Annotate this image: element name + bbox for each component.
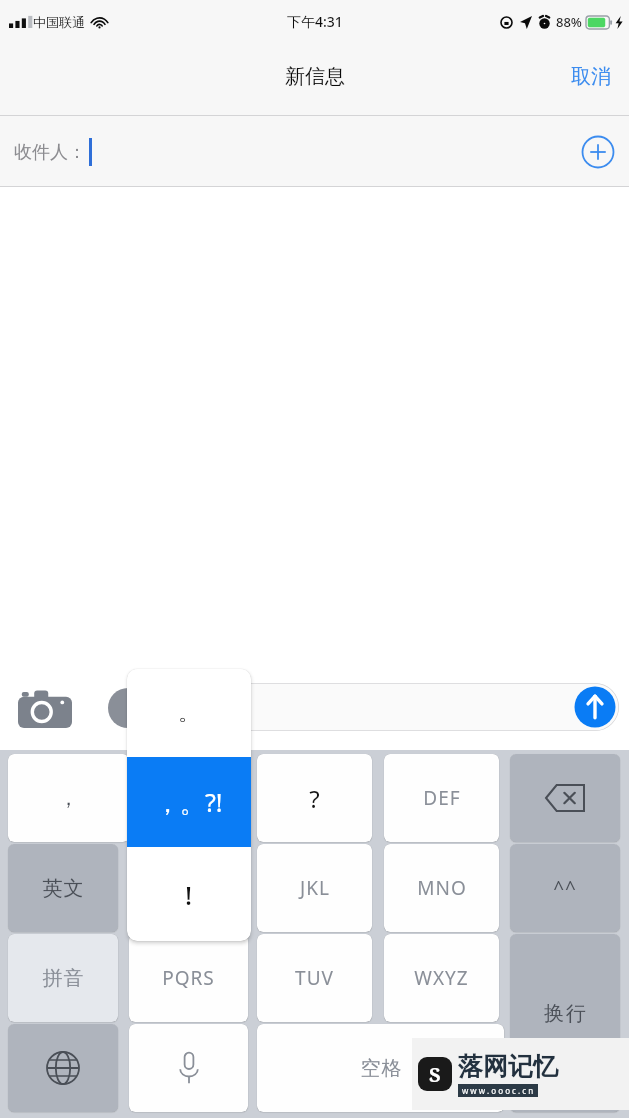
staticText: ^^: [553, 875, 577, 901]
button[interactable]: 换行: [510, 934, 620, 1112]
staticText: S: [429, 1061, 441, 1088]
button[interactable]: 拼音: [8, 934, 118, 1022]
button[interactable]: Add contact: [581, 135, 615, 169]
button[interactable]: Dictation: [129, 1024, 248, 1112]
staticText: 下午4:31: [287, 12, 343, 31]
staticText: 拼音: [42, 966, 84, 991]
staticText: 88%: [556, 13, 582, 31]
button[interactable]: TUV: [257, 934, 372, 1022]
staticText: 中国联通: [33, 14, 85, 30]
button[interactable]: 。: [127, 669, 251, 941]
staticText: ，。?!: [155, 785, 223, 819]
button[interactable]: ?: [257, 754, 372, 842]
staticText: 取消: [571, 64, 611, 89]
button[interactable]: 空格: [257, 1024, 504, 1112]
button[interactable]: Switch keyboard: [8, 1024, 118, 1112]
staticText: 新信息: [285, 64, 345, 89]
button[interactable]: Send: [573, 685, 617, 729]
staticText: ?: [309, 782, 321, 815]
button[interactable]: ^^: [510, 844, 620, 932]
staticText: 换行: [543, 1001, 587, 1026]
staticText: 收件人：: [14, 141, 86, 164]
button[interactable]: Send: [149, 683, 619, 731]
staticText: 空格: [360, 1056, 402, 1081]
button[interactable]: PQRS: [129, 934, 248, 1022]
staticText: 英文: [42, 876, 84, 901]
staticText: !: [185, 877, 193, 912]
staticText: TUV: [295, 965, 334, 991]
button[interactable]: ，: [8, 754, 129, 842]
staticText: MNO: [417, 875, 467, 901]
button[interactable]: Delete: [510, 754, 620, 842]
staticText: WXYZ: [414, 965, 469, 991]
staticText: DEF: [423, 785, 461, 811]
button[interactable]: 取消: [553, 56, 629, 97]
staticText: w w w . o o o c . c n: [462, 1085, 534, 1096]
button[interactable]: 英文: [8, 844, 118, 932]
button[interactable]: Camera: [16, 686, 74, 730]
staticText: 。: [178, 699, 200, 727]
button[interactable]: WXYZ: [384, 934, 499, 1022]
button[interactable]: DEF: [384, 754, 499, 842]
button[interactable]: MNO: [384, 844, 499, 932]
staticText: PQRS: [162, 965, 215, 991]
staticText: ，: [58, 786, 79, 811]
staticText: 落网记忆: [458, 1051, 558, 1082]
staticText: JKL: [300, 875, 330, 901]
button[interactable]: JKL: [257, 844, 372, 932]
